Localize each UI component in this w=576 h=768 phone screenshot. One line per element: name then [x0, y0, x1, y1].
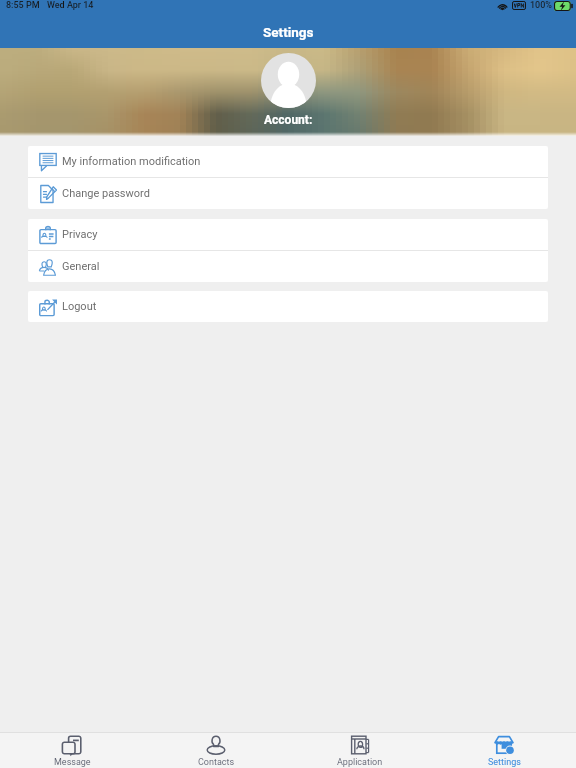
button[interactable]: Change password: [28, 178, 548, 209]
button[interactable]: My information modification: [28, 146, 548, 177]
staticText: General: [62, 260, 100, 273]
staticText: Settings: [488, 757, 521, 768]
staticText: 8:55 PM: [6, 0, 40, 11]
staticText: Message: [54, 757, 91, 768]
staticText: Logout: [62, 300, 97, 313]
staticText: Privacy: [62, 228, 98, 241]
staticText: Contacts: [198, 757, 235, 768]
button[interactable]: Message: [0, 733, 144, 768]
button[interactable]: General: [28, 251, 548, 282]
staticText: 100%: [530, 0, 552, 11]
staticText: Settings: [263, 24, 314, 40]
button[interactable]: Settings: [432, 733, 576, 768]
staticText: My information modification: [62, 155, 201, 168]
staticText: Wed Apr 14: [47, 0, 94, 11]
button[interactable]: Logout: [28, 291, 548, 322]
staticText: Application: [337, 757, 383, 768]
staticText: Change password: [62, 187, 150, 200]
button[interactable]: Contacts: [144, 733, 288, 768]
staticText: Account:: [264, 113, 313, 127]
button[interactable]: Application: [288, 733, 432, 768]
button[interactable]: Privacy: [28, 219, 548, 250]
